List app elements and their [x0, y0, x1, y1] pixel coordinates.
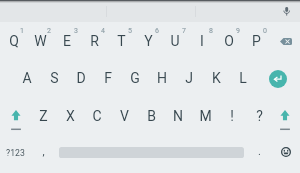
button[interactable]: Voice input — [276, 1, 297, 22]
button[interactable]: V — [111, 101, 137, 131]
button[interactable]: J — [176, 63, 202, 93]
button[interactable]: W — [27, 26, 53, 56]
staticText: K — [212, 70, 221, 86]
button[interactable]: D — [68, 63, 94, 93]
button[interactable]: Z — [30, 101, 56, 131]
staticText: F — [104, 70, 112, 86]
button[interactable]: E — [54, 26, 80, 56]
button[interactable]: Shift — [3, 105, 29, 131]
button[interactable]: . — [246, 136, 272, 166]
staticText: V — [120, 108, 129, 124]
staticText: , — [42, 145, 45, 158]
staticText: X — [66, 108, 75, 124]
staticText: ! — [230, 108, 234, 124]
staticText: 9 — [236, 27, 240, 35]
staticText: Y — [144, 33, 153, 49]
staticText: N — [173, 108, 183, 124]
staticText: 5 — [128, 27, 132, 35]
button[interactable]: , — [30, 136, 56, 166]
button[interactable]: O — [216, 26, 242, 56]
staticText: I — [200, 33, 204, 49]
staticText: A — [22, 70, 32, 86]
button[interactable]: A — [14, 63, 40, 93]
button[interactable]: Enter — [269, 70, 287, 88]
staticText: 7 — [182, 27, 186, 35]
staticText: Z — [39, 108, 48, 124]
button[interactable]: H — [149, 63, 175, 93]
staticText: B — [147, 108, 156, 124]
button[interactable]: Backspace — [272, 27, 300, 55]
staticText: P — [252, 33, 261, 49]
button[interactable]: P — [243, 26, 269, 56]
staticText: D — [76, 70, 86, 86]
button[interactable]: K — [203, 63, 229, 93]
staticText: S — [50, 70, 59, 86]
staticText: 1 — [20, 27, 24, 35]
button[interactable]: R — [81, 26, 107, 56]
staticText: 3 — [74, 27, 78, 35]
staticText: . — [258, 145, 261, 158]
staticText: 0 — [263, 27, 267, 35]
staticText: E — [63, 33, 71, 49]
staticText: 2 — [47, 27, 51, 35]
button[interactable]: ?123 — [2, 138, 28, 168]
staticText: W — [34, 33, 47, 49]
staticText: T — [117, 33, 126, 49]
staticText: J — [185, 70, 193, 86]
button[interactable]: N — [165, 101, 191, 131]
button[interactable]: Emoji — [274, 140, 298, 164]
staticText: 8 — [209, 27, 213, 35]
button[interactable]: Shift — [272, 105, 298, 131]
button[interactable]: F — [95, 63, 121, 93]
staticText: 4 — [101, 27, 105, 35]
staticText: L — [239, 70, 247, 86]
staticText: G — [130, 70, 140, 86]
button[interactable]: Q — [1, 26, 27, 56]
button[interactable]: ? — [246, 101, 272, 131]
button[interactable]: G — [122, 63, 148, 93]
staticText: H — [157, 70, 167, 86]
button[interactable]: ! — [219, 101, 245, 131]
button[interactable]: X — [57, 101, 83, 131]
staticText: C — [92, 108, 102, 124]
button[interactable]: C — [84, 101, 110, 131]
button[interactable]: U — [162, 26, 188, 56]
staticText: ? — [256, 108, 263, 124]
button[interactable]: B — [138, 101, 164, 131]
staticText: U — [170, 33, 180, 49]
staticText: R — [90, 33, 99, 49]
button[interactable]: I — [189, 26, 215, 56]
staticText: Q — [9, 33, 19, 49]
button[interactable]: Y — [135, 26, 161, 56]
button[interactable]: L — [230, 63, 256, 93]
staticText: O — [224, 33, 234, 49]
button[interactable]: M — [192, 101, 218, 131]
button[interactable]: S — [41, 63, 67, 93]
staticText: M — [199, 108, 212, 124]
button[interactable]: T — [108, 26, 134, 56]
staticText: 6 — [155, 27, 159, 35]
staticText: ?123 — [6, 148, 25, 158]
